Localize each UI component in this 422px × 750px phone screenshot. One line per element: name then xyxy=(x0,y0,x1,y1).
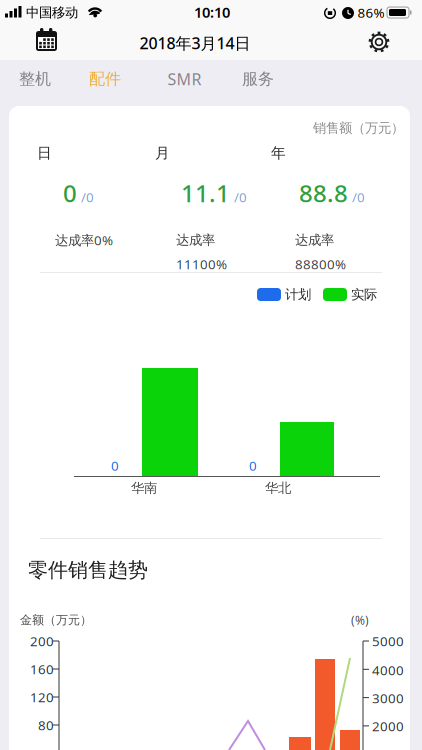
staticText: 销售额（万元） xyxy=(313,120,404,136)
staticText: 服务 xyxy=(242,69,274,89)
staticText: 金额（万元） xyxy=(20,613,92,627)
staticText: 160 xyxy=(30,660,54,678)
staticText: 华南 xyxy=(131,480,157,496)
staticText: 零件销售趋势 xyxy=(28,558,148,582)
staticText: 达成率 xyxy=(295,232,334,248)
button[interactable]: 服务 xyxy=(242,64,302,94)
staticText: 整机 xyxy=(19,69,51,89)
staticText: 0 xyxy=(249,457,257,474)
staticText: 3000 xyxy=(372,689,404,707)
staticText: 日 xyxy=(37,144,52,162)
staticText: 计划 xyxy=(285,286,311,303)
staticText: 实际 xyxy=(351,286,377,303)
button[interactable]: 配件 xyxy=(89,64,149,94)
button[interactable]: SMR xyxy=(167,64,227,94)
staticText: 5000 xyxy=(372,632,404,650)
staticText: 4000 xyxy=(372,661,404,679)
button[interactable]: Settings xyxy=(367,30,391,54)
staticText: 达成率 xyxy=(176,232,215,248)
staticText: 10:10 xyxy=(194,2,230,22)
staticText: 中国移动 xyxy=(26,4,78,21)
staticText: /0 xyxy=(234,188,247,206)
staticText: 200 xyxy=(30,632,54,650)
staticText: 120 xyxy=(30,688,54,706)
staticText: 年 xyxy=(271,144,286,162)
staticText: 88800% xyxy=(295,255,346,273)
staticText: 达成率0% xyxy=(55,231,113,249)
button[interactable]: 整机 xyxy=(19,64,79,94)
staticText: 11100% xyxy=(176,255,227,273)
staticText: 华北 xyxy=(265,480,291,496)
staticText: /0 xyxy=(352,188,365,206)
staticText: 月 xyxy=(155,144,170,162)
staticText: 2000 xyxy=(372,717,404,735)
staticText: 86% xyxy=(357,4,384,21)
staticText: 80 xyxy=(38,716,54,734)
staticText: /0 xyxy=(81,188,94,206)
staticText: 2018年3月14日 xyxy=(139,32,250,54)
staticText: 88.8 xyxy=(299,177,348,209)
staticText: SMR xyxy=(167,68,201,90)
staticText: (%) xyxy=(351,612,369,628)
staticText: 11.1 xyxy=(181,177,230,209)
staticText: 0 xyxy=(63,177,77,209)
staticText: 配件 xyxy=(89,69,121,89)
staticText: 0 xyxy=(111,457,119,474)
button[interactable]: Calendar xyxy=(32,27,60,55)
